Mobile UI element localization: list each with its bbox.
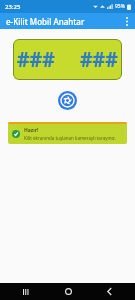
button[interactable]: ### ### [13,39,122,80]
button[interactable]: Home [58,283,78,300]
staticText: 95% [115,3,125,10]
button[interactable]: Hazır! [8,122,127,144]
staticText: Hazır! [24,127,39,134]
button[interactable]: Unlock [58,91,77,110]
button[interactable]: More options [119,13,135,29]
staticText: e-Kilit Mobil Anahtar [6,16,85,27]
button[interactable]: Recent apps [16,283,36,300]
staticText: Kilit ekranında tuşlanan kameraylı taray… [24,135,116,141]
button[interactable]: Back [99,283,119,300]
staticText: ### ### [17,45,118,74]
staticText: 23:25 [5,3,21,11]
